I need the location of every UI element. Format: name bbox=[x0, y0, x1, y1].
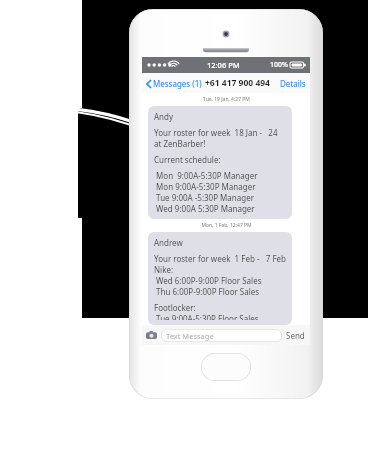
staticText: 12:06 PM bbox=[207, 60, 240, 70]
button[interactable]: Text Message bbox=[161, 329, 282, 342]
staticText: Details bbox=[280, 78, 306, 89]
staticText: Wed 6:00P-9:00P Floor Sales bbox=[154, 275, 262, 286]
staticText: Tue 9:00A -5:30P Manager bbox=[154, 192, 255, 203]
button[interactable]: Messages (1) bbox=[145, 78, 203, 89]
button[interactable]: Take photo bbox=[146, 330, 157, 341]
staticText: Nike: bbox=[154, 264, 174, 275]
staticText: Messages (1) bbox=[153, 78, 202, 89]
staticText: 100% bbox=[270, 60, 288, 70]
staticText: Your roster for week 1 Feb - 7 Feb bbox=[154, 253, 286, 264]
staticText: Your roster for week 18 Jan - 24 Jan bbox=[154, 127, 286, 138]
staticText: Mon 9:00A-5:30P Manager bbox=[154, 181, 256, 192]
staticText: Andrew bbox=[154, 237, 183, 248]
staticText: Footlocker: bbox=[154, 302, 196, 313]
button[interactable]: Andy bbox=[148, 106, 292, 219]
staticText: +61 417 900 494 bbox=[205, 77, 270, 89]
staticText: Mon, 1 Feb, 12:47 PM bbox=[201, 222, 252, 229]
staticText: Tue 9:00A-5:30P Floor Sales bbox=[154, 313, 259, 320]
button[interactable]: Details bbox=[279, 78, 307, 89]
staticText: Wed 9:00A 5:30P Manager bbox=[154, 203, 255, 214]
staticText: Andy bbox=[154, 111, 174, 122]
staticText: Send bbox=[286, 330, 305, 341]
button[interactable]: Andrew bbox=[148, 232, 292, 325]
button[interactable]: Send bbox=[285, 330, 306, 341]
staticText: at ZenBarber! bbox=[154, 138, 206, 149]
staticText: Tue, 19 Jan, 4:27 PM bbox=[203, 96, 250, 103]
staticText: Thu 6:00P-9:00P Floor Sales bbox=[154, 286, 260, 297]
staticText: Text Message bbox=[166, 331, 214, 341]
staticText: Current schedule: bbox=[154, 154, 221, 165]
button[interactable]: Home bbox=[201, 353, 251, 381]
staticText: Mon 9:00A-5:30P Manager bbox=[154, 170, 258, 181]
